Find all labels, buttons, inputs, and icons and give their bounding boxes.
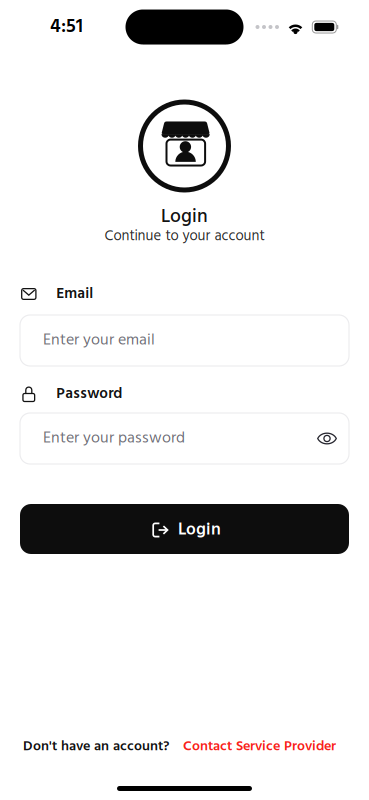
staticText: Enter your password — [43, 426, 185, 451]
staticText: 4:51 — [50, 11, 83, 42]
staticText: Don't have an account? — [23, 735, 169, 758]
button[interactable]: Show password — [309, 418, 345, 458]
staticText: Contact Service Provider — [183, 735, 336, 758]
staticText: Login — [178, 516, 221, 544]
button[interactable]: Login — [20, 504, 349, 554]
staticText: Continue to your account — [104, 225, 264, 248]
staticText: Email — [56, 282, 93, 306]
button[interactable]: Contact Service Provider — [183, 735, 336, 758]
staticText: Password — [56, 382, 122, 406]
staticText: Enter your email — [43, 328, 155, 353]
staticText: Login — [161, 201, 208, 232]
